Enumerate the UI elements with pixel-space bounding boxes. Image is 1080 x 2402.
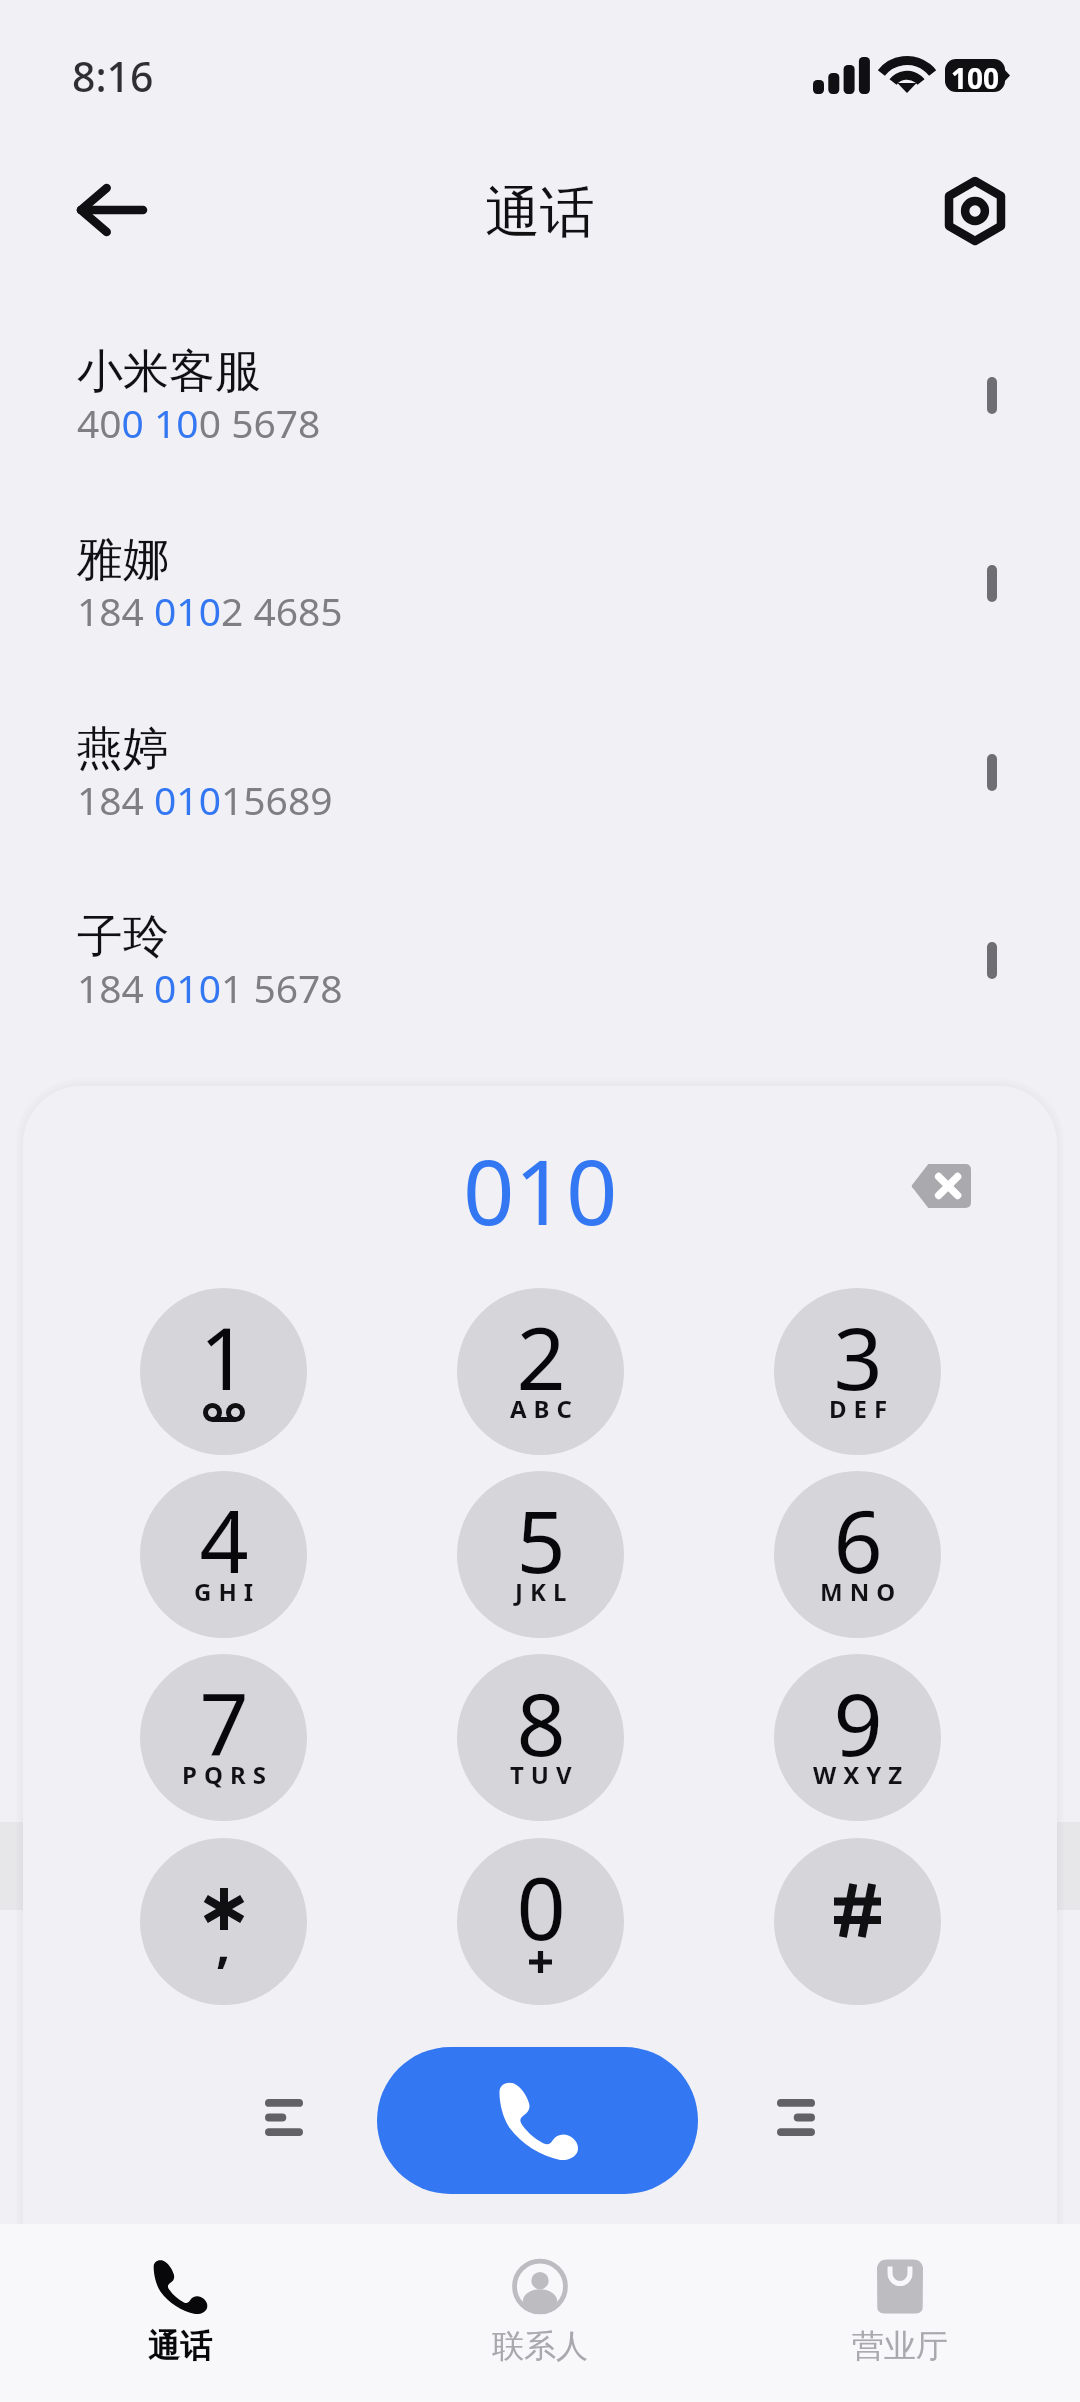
staticText: 通话 — [485, 178, 595, 247]
button[interactable]: 4 — [140, 1471, 307, 1638]
button[interactable]: 2 — [457, 1288, 624, 1455]
button[interactable]: 1 — [140, 1288, 307, 1455]
staticText: 184 0101 5678 — [77, 961, 343, 1014]
button[interactable]: Call — [377, 2047, 698, 2194]
button[interactable]: 9 — [774, 1654, 941, 1821]
button[interactable]: 5 — [457, 1471, 624, 1638]
staticText: 联系人 — [492, 2326, 588, 2366]
staticText: 通话 — [148, 2326, 212, 2366]
button[interactable]: 营业厅 — [780, 2224, 1020, 2402]
staticText: 8:16 — [72, 48, 154, 104]
staticText: 7 — [199, 1664, 249, 1781]
staticText: JKL — [515, 1575, 574, 1608]
staticText: 6 — [833, 1481, 883, 1598]
button[interactable]: Backspace — [885, 1131, 995, 1241]
button[interactable]: 6 — [774, 1471, 941, 1638]
button[interactable]: 联系人 — [420, 2224, 660, 2402]
staticText: 1 — [199, 1298, 249, 1415]
staticText: PQRS — [182, 1758, 273, 1791]
button[interactable]: 0 — [457, 1838, 624, 2005]
button[interactable]: More options — [741, 2062, 851, 2172]
staticText: 010 — [463, 1129, 618, 1252]
button[interactable] — [774, 1838, 941, 2005]
staticText: 5 — [516, 1481, 566, 1598]
button[interactable]: 通话 — [60, 2224, 300, 2402]
staticText: 燕婷 — [77, 720, 169, 778]
button[interactable]: 雅娜 — [0, 518, 1080, 706]
staticText: DEF — [829, 1392, 895, 1425]
staticText: 8 — [516, 1664, 566, 1781]
button[interactable]: 7 — [140, 1654, 307, 1821]
staticText: TUV — [510, 1758, 579, 1791]
staticText: GHI — [194, 1575, 261, 1608]
staticText: 子玲 — [77, 908, 169, 966]
staticText: MNO — [820, 1575, 903, 1608]
staticText: 100 — [951, 59, 1000, 92]
button[interactable]: Back — [54, 154, 166, 266]
staticText: 雅娜 — [77, 531, 169, 589]
staticText: 184 0102 4685 — [77, 584, 343, 637]
staticText: 4 — [199, 1481, 249, 1598]
button[interactable]: , — [140, 1838, 307, 2005]
staticText: WXYZ — [813, 1758, 910, 1791]
button[interactable]: Settings — [919, 155, 1031, 267]
button[interactable]: 8 — [457, 1654, 624, 1821]
staticText: 小米客服 — [77, 343, 261, 401]
button[interactable]: Dial options — [229, 2062, 339, 2172]
staticText: 9 — [833, 1664, 883, 1781]
button[interactable]: 子玲 — [0, 895, 1080, 1083]
staticText: 2 — [516, 1298, 566, 1415]
button[interactable]: 小米客服 — [0, 330, 1080, 518]
staticText: ABC — [510, 1392, 579, 1425]
staticText: 3 — [833, 1298, 883, 1415]
button[interactable]: 3 — [774, 1288, 941, 1455]
staticText: , — [216, 1910, 231, 1978]
staticText: 184 01015689 — [77, 773, 333, 826]
staticText: 400 100 5678 — [77, 396, 321, 449]
button[interactable]: 燕婷 — [0, 707, 1080, 895]
staticText: 营业厅 — [852, 2326, 948, 2366]
staticText: 0 — [516, 1848, 566, 1965]
